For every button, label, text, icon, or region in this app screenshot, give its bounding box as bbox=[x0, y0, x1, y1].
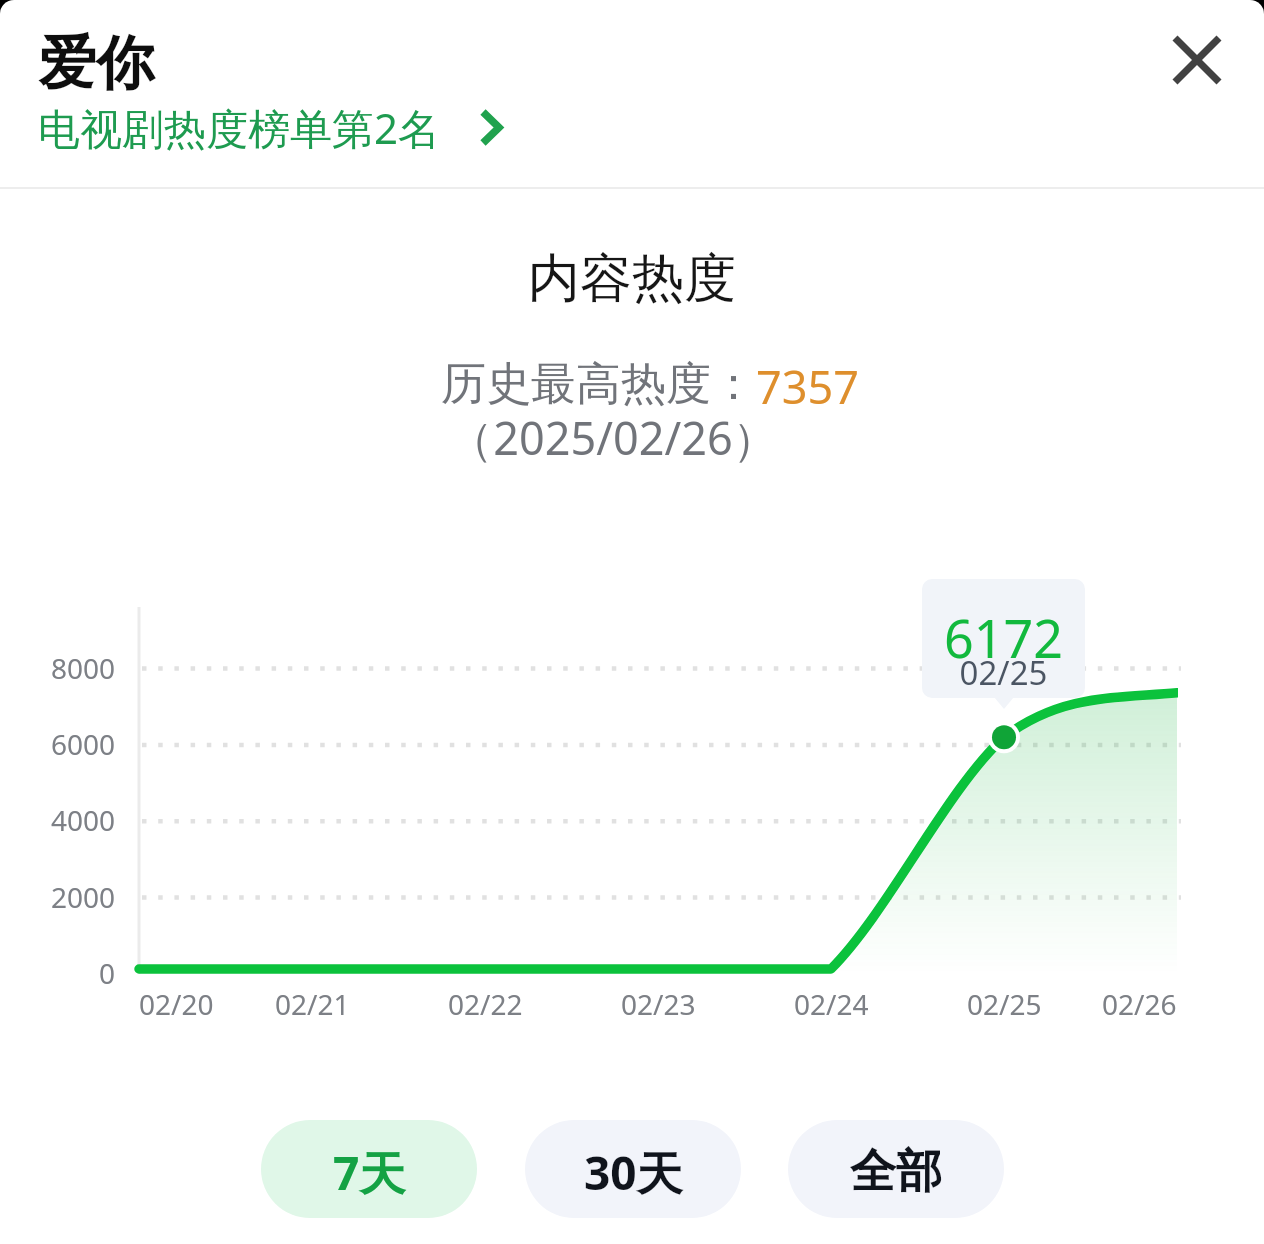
staticText: 02/25 bbox=[967, 985, 1042, 1023]
staticText: 02/24 bbox=[794, 985, 869, 1023]
staticText: （2025/02/26） bbox=[0, 407, 1245, 468]
staticText: 02/22 bbox=[448, 985, 523, 1023]
staticText: 爱你 bbox=[38, 27, 154, 100]
staticText: 02/20 bbox=[139, 985, 214, 1023]
staticText: 电视剧热度榜单第2名 bbox=[38, 99, 441, 156]
button[interactable]: 30天 bbox=[525, 1120, 741, 1218]
staticText: 全部 bbox=[850, 1143, 942, 1201]
staticText: 历史最高热度： bbox=[441, 356, 756, 413]
staticText: 02/23 bbox=[621, 985, 696, 1023]
staticText: 6172 bbox=[922, 602, 1085, 673]
staticText: 7357 bbox=[756, 356, 859, 417]
button[interactable]: 关闭 bbox=[1151, 14, 1243, 106]
button[interactable]: 7天 bbox=[261, 1120, 477, 1218]
staticText: 4000 bbox=[51, 801, 116, 839]
staticText: 30天 bbox=[584, 1141, 683, 1204]
staticText: 2000 bbox=[51, 878, 116, 916]
staticText: 02/26 bbox=[1102, 985, 1177, 1023]
staticText: 8000 bbox=[51, 649, 116, 687]
staticText: 6000 bbox=[51, 725, 116, 763]
button[interactable]: 全部 bbox=[788, 1120, 1004, 1218]
button[interactable]: 电视剧热度榜单第2名 bbox=[38, 99, 502, 156]
staticText: 内容热度 bbox=[0, 246, 1264, 312]
staticText: 0 bbox=[99, 954, 116, 992]
staticText: 7天 bbox=[333, 1141, 406, 1204]
staticText: 02/25 bbox=[922, 650, 1085, 695]
staticText: 02/21 bbox=[275, 985, 350, 1023]
